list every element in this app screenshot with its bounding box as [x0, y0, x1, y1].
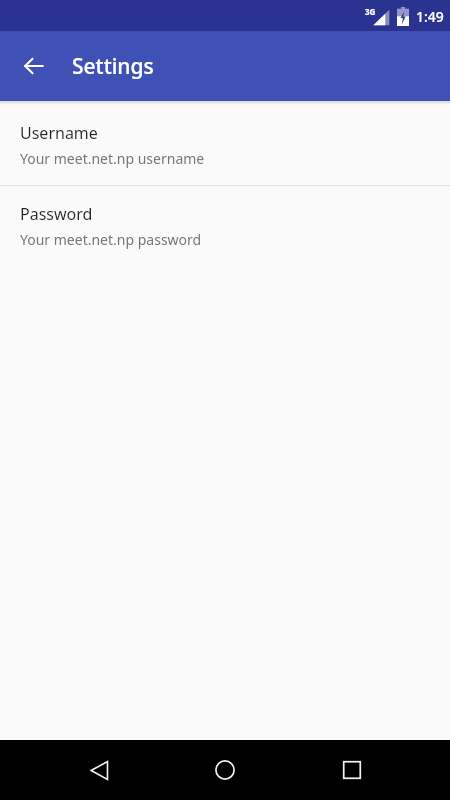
staticText: Password	[20, 203, 93, 225]
staticText: Settings	[72, 52, 154, 81]
button[interactable]: Username	[0, 105, 450, 185]
button[interactable]: Password	[0, 186, 450, 266]
button[interactable]: Back	[71, 742, 127, 798]
staticText: Your meet.net.np password	[20, 230, 202, 249]
staticText: Username	[20, 122, 98, 144]
button[interactable]: Home	[197, 742, 253, 798]
staticText: 1:49	[416, 7, 444, 26]
staticText: 3G	[365, 6, 376, 17]
button[interactable]: Recent apps	[324, 742, 380, 798]
staticText: Your meet.net.np username	[20, 149, 205, 168]
button[interactable]: Back	[10, 42, 58, 90]
